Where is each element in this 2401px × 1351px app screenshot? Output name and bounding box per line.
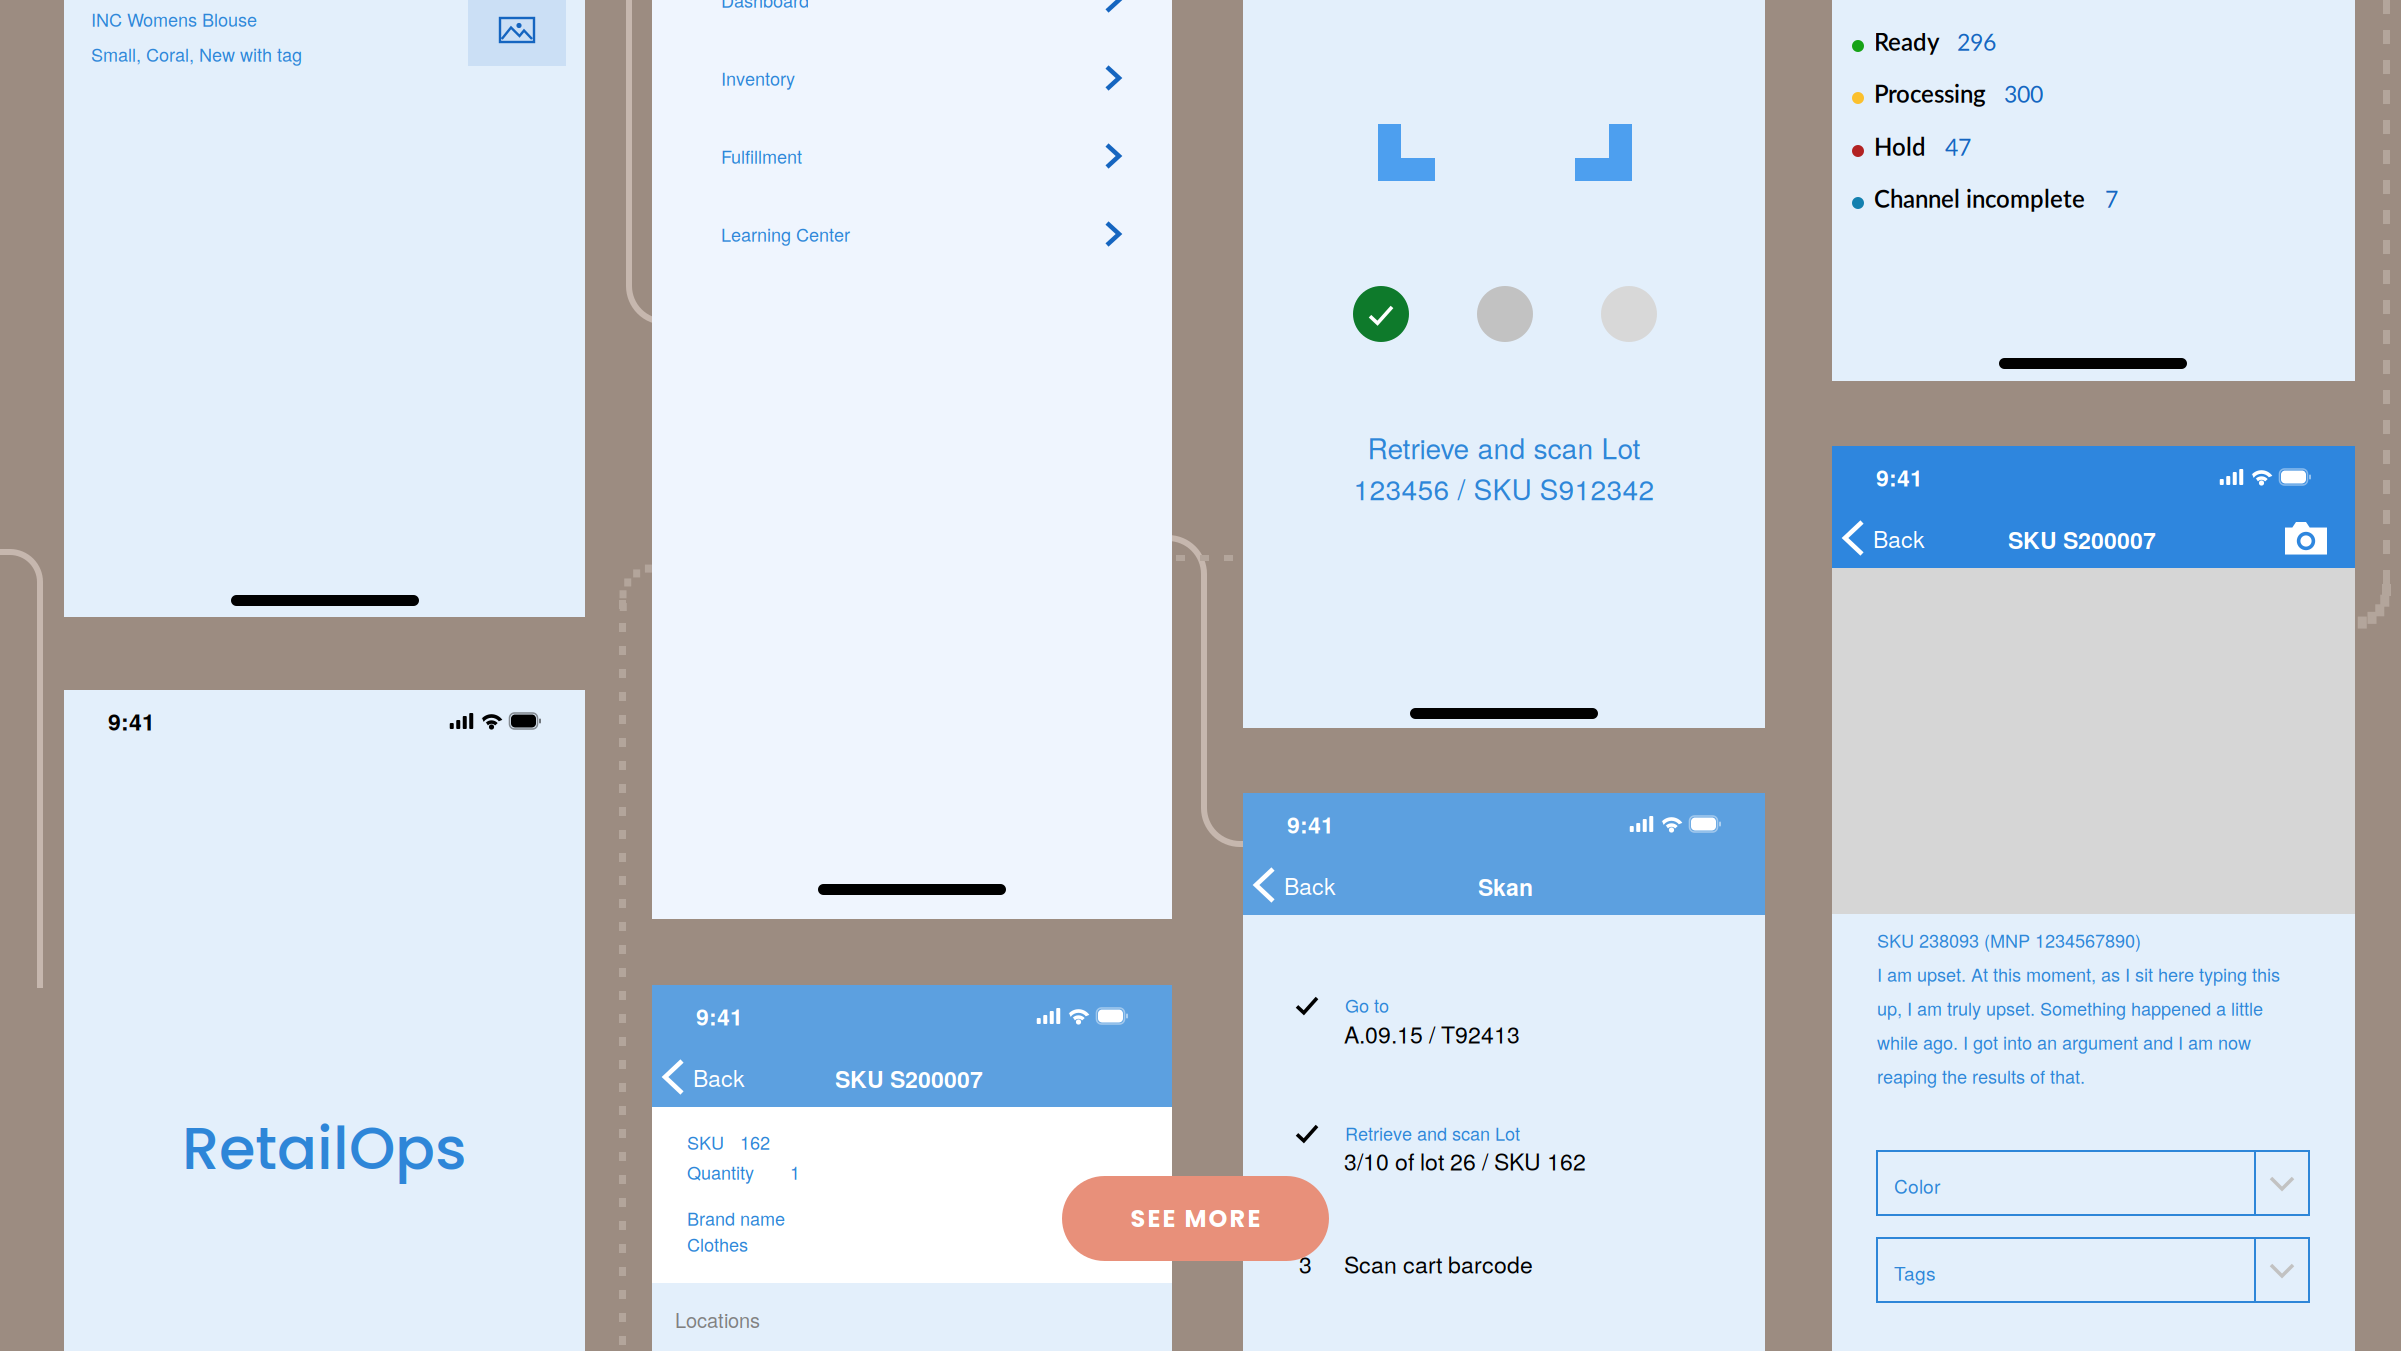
staticText: SKU S200007 (2008, 523, 2156, 556)
staticText: 3/10 of lot 26 / SKU 162 (1344, 1144, 1586, 1177)
staticText: 162 (740, 1129, 770, 1155)
staticText: 296 (1957, 28, 1996, 56)
staticText: up, I am truly upset. Something happened… (1877, 995, 2263, 1021)
staticText: Fulfillment (721, 143, 802, 169)
staticText: Channel incomplete (1874, 184, 2085, 213)
staticText: 9:41 (108, 704, 155, 737)
staticText: Brand name (687, 1205, 785, 1231)
staticText: 47 (1945, 133, 1971, 161)
staticText: Processing (1874, 79, 1986, 108)
staticText: 9:41 (696, 999, 743, 1032)
staticText: Quantity (687, 1159, 754, 1185)
staticText: 1 (790, 1159, 800, 1185)
button[interactable]: Color (1877, 1151, 2309, 1215)
staticText: Retrieve and scan Lot (1345, 1120, 1520, 1146)
staticText: Small, Coral, New with tag (91, 41, 302, 67)
button[interactable]: Inventory (652, 39, 1172, 117)
staticText: reaping the results of that. (1877, 1063, 2085, 1089)
staticText: Ready (1874, 27, 1940, 56)
staticText: Learning Center (721, 221, 850, 247)
staticText: Inventory (721, 65, 795, 91)
staticText: 123456 / SKU S912342 (1353, 468, 1654, 508)
staticText: Back (1873, 521, 1925, 554)
staticText: SKU (687, 1129, 724, 1155)
staticText: Tags (1894, 1259, 1936, 1286)
button[interactable]: Dashboard (652, 0, 1172, 39)
staticText: 300 (2004, 80, 2043, 108)
button[interactable]: Camera (2269, 508, 2343, 568)
staticText: SKU S200007 (835, 1062, 983, 1095)
button[interactable]: Back (1832, 508, 1941, 568)
staticText: 9:41 (1287, 807, 1334, 840)
staticText: Locations (675, 1305, 760, 1334)
staticText: 9:41 (1876, 460, 1923, 493)
staticText: Scan cart barcode (1344, 1247, 1533, 1280)
staticText: SEE MORE (1130, 1202, 1260, 1235)
staticText: while ago. I got into an argument and I … (1877, 1029, 2251, 1055)
button[interactable]: Tags (1877, 1238, 2309, 1302)
staticText: I am upset. At this moment, as I sit her… (1877, 961, 2280, 987)
staticText: INC Womens Blouse (91, 6, 257, 32)
staticText: Back (693, 1060, 745, 1093)
staticText: Color (1894, 1172, 1940, 1199)
staticText: SKU 238093 (MNP 1234567890) (1877, 927, 2141, 953)
button[interactable]: Back (1243, 855, 1352, 915)
button[interactable]: Fulfillment (652, 117, 1172, 195)
staticText: 7 (2105, 185, 2118, 213)
staticText: Retrieve and scan Lot (1367, 427, 1640, 467)
staticText: Dashboard (721, 0, 809, 13)
staticText: A.09.15 / T92413 (1344, 1017, 1520, 1050)
button[interactable]: Back (652, 1047, 761, 1107)
button[interactable]: Learning Center (652, 195, 1172, 273)
staticText: Skan (1478, 870, 1533, 903)
staticText: Back (1284, 868, 1336, 901)
staticText: Hold (1874, 132, 1926, 161)
button[interactable]: SEE MORE (1062, 1176, 1329, 1261)
staticText: Go to (1345, 992, 1389, 1018)
staticText: 3 (1299, 1247, 1312, 1280)
staticText: Clothes (687, 1231, 748, 1257)
staticText: RetailOps (182, 1107, 467, 1190)
